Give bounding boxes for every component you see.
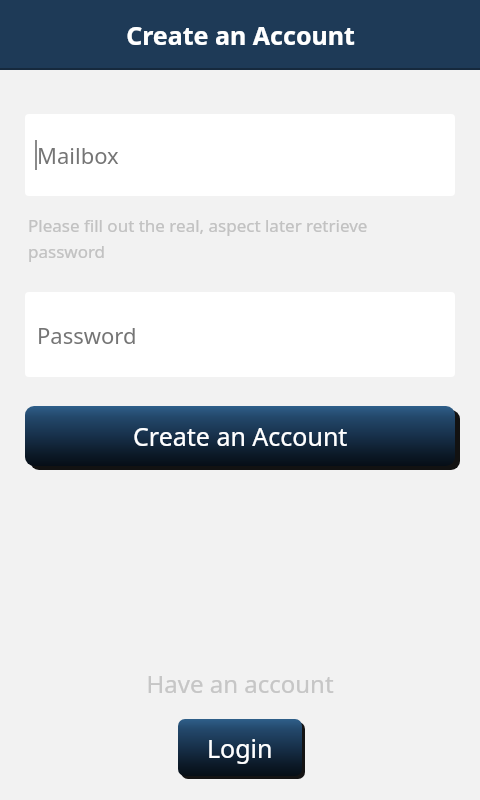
button[interactable]: Mailbox bbox=[25, 114, 455, 196]
staticText: Create an Account bbox=[126, 18, 355, 52]
staticText: Password bbox=[37, 320, 137, 350]
staticText: Please fill out the real, aspect later r… bbox=[28, 214, 410, 263]
staticText: Mailbox bbox=[37, 140, 119, 170]
button[interactable]: Create an Account bbox=[25, 406, 455, 466]
staticText: Login bbox=[207, 731, 273, 765]
button[interactable]: Login bbox=[178, 719, 302, 776]
staticText: Create an Account bbox=[133, 419, 348, 453]
button[interactable]: Password bbox=[25, 292, 455, 377]
staticText: Have an account bbox=[0, 667, 480, 700]
